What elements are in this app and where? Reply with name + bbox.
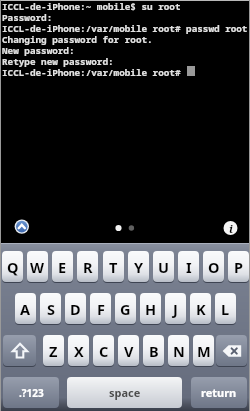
button[interactable]: C [93, 335, 114, 366]
staticText: P [234, 257, 244, 277]
button[interactable] [216, 335, 247, 366]
staticText: R [83, 257, 93, 277]
button[interactable]: T [103, 251, 124, 282]
button[interactable]: i [223, 220, 239, 236]
staticText: Z [49, 341, 58, 361]
staticText: Retype new password: [2, 55, 114, 68]
button[interactable]: E [52, 251, 73, 282]
staticText: Y [134, 257, 144, 277]
button[interactable]: K [190, 293, 211, 324]
staticText: A [20, 299, 31, 319]
button[interactable]: return [191, 377, 247, 408]
button[interactable]: D [65, 293, 86, 324]
button[interactable]: space [67, 377, 182, 408]
button[interactable]: W [27, 251, 48, 282]
button[interactable]: R [77, 251, 98, 282]
button[interactable]: X [68, 335, 89, 366]
button[interactable] [11, 216, 33, 238]
button[interactable]: V [118, 335, 139, 366]
staticText: K [196, 299, 206, 319]
button[interactable]: Q [2, 251, 23, 282]
button[interactable] [3, 335, 36, 366]
staticText: I [186, 257, 192, 277]
staticText: C [99, 341, 109, 361]
staticText: D [70, 299, 81, 319]
staticText: Q [7, 257, 19, 277]
staticText: i [229, 221, 233, 236]
staticText: M [197, 341, 211, 361]
button[interactable]: M [193, 335, 214, 366]
button[interactable]: G [115, 293, 136, 324]
button[interactable]: J [165, 293, 186, 324]
button[interactable]: N [168, 335, 189, 366]
button[interactable]: B [143, 335, 164, 366]
staticText: H [145, 299, 157, 319]
staticText: L [221, 299, 230, 319]
button[interactable]: F [90, 293, 111, 324]
staticText: J [173, 299, 178, 319]
staticText: New password: [2, 44, 75, 57]
staticText: O [208, 257, 220, 277]
button[interactable]: I [178, 251, 199, 282]
staticText: ICCL-de-iPhone:/var/mobile root# passwd … [2, 22, 248, 35]
staticText: .?123 [19, 386, 44, 400]
button[interactable]: A [15, 293, 36, 324]
button[interactable]: U [153, 251, 174, 282]
staticText: E [58, 257, 67, 277]
staticText: Changing password for root. [2, 33, 153, 46]
staticText: X [74, 341, 84, 361]
button[interactable]: P [228, 251, 249, 282]
button[interactable]: Z [43, 335, 64, 366]
staticText: Password: [2, 11, 53, 24]
staticText: space [109, 385, 141, 400]
button[interactable]: Y [128, 251, 149, 282]
button[interactable]: H [140, 293, 161, 324]
staticText: V [124, 341, 134, 361]
staticText: U [158, 257, 169, 277]
staticText: F [97, 299, 105, 319]
button[interactable]: S [40, 293, 61, 324]
staticText: T [109, 257, 118, 277]
staticText: G [120, 299, 131, 319]
staticText: ICCL-de-iPhone:/var/mobile root# [2, 66, 181, 79]
button[interactable]: .?123 [3, 377, 59, 408]
staticText: return [201, 385, 237, 400]
button[interactable]: L [215, 293, 236, 324]
staticText: S [47, 299, 55, 319]
staticText: W [30, 257, 45, 277]
button[interactable]: O [203, 251, 224, 282]
staticText: N [173, 341, 185, 361]
staticText: ICCL-de-iPhone:~ mobile$ su root [2, 0, 181, 13]
staticText: B [149, 341, 159, 361]
